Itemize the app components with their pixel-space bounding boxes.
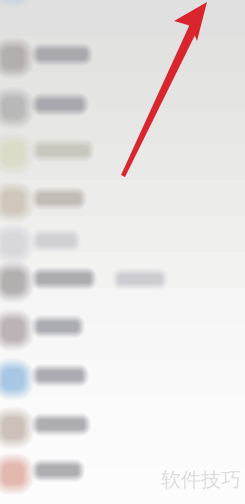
button[interactable] [0,178,245,226]
button[interactable] [0,404,245,452]
button[interactable] [0,84,245,132]
button[interactable] [0,130,245,178]
button[interactable] [0,0,245,12]
button[interactable] [0,355,245,403]
staticText: 软件技巧 [161,467,241,492]
button[interactable] [0,258,245,306]
button[interactable] [0,34,245,82]
button[interactable] [0,220,245,268]
button[interactable] [0,306,245,354]
button[interactable] [0,450,245,498]
